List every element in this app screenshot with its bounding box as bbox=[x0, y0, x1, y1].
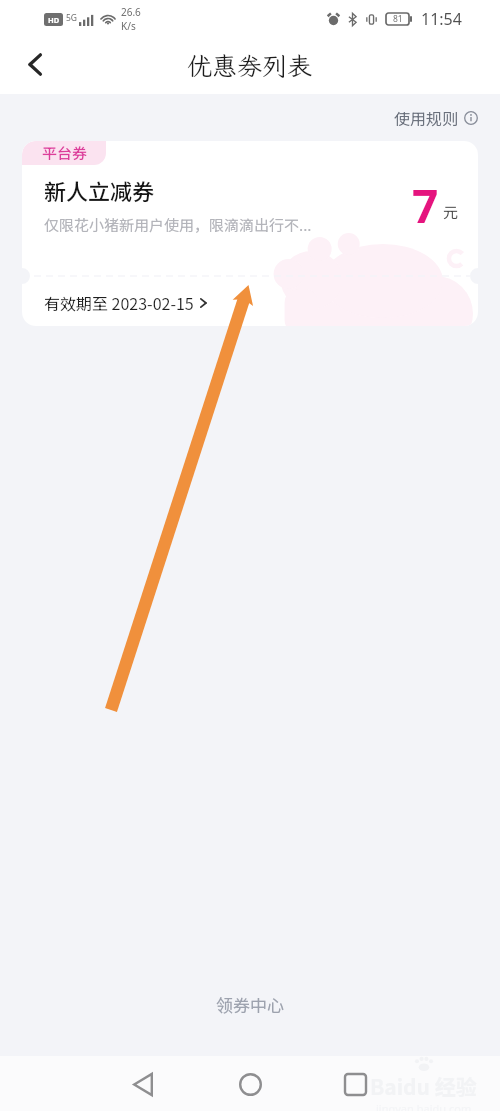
staticText: 平台券 bbox=[42, 142, 88, 164]
staticText: 11:54 bbox=[421, 8, 462, 30]
staticText: 优惠券列表 bbox=[187, 49, 313, 82]
button[interactable]: 使用规则 bbox=[390, 102, 482, 133]
button[interactable]: Recents bbox=[331, 1060, 379, 1108]
button[interactable]: 新人立减券 bbox=[22, 141, 478, 326]
staticText: 26.6 bbox=[121, 5, 141, 19]
button[interactable]: Back bbox=[119, 1060, 167, 1108]
staticText: 元 bbox=[443, 201, 459, 223]
staticText: HD bbox=[48, 15, 60, 25]
button[interactable]: 领券中心 bbox=[204, 986, 296, 1023]
staticText: K/s bbox=[121, 19, 136, 33]
staticText: 有效期至 2023-02-15 bbox=[44, 291, 194, 314]
staticText: 仅限花小猪新用户使用，限滴滴出行不... bbox=[44, 214, 312, 236]
staticText: 5G bbox=[66, 12, 78, 24]
staticText: Baidu 经验 bbox=[370, 1071, 477, 1101]
button[interactable]: Home bbox=[226, 1060, 274, 1108]
staticText: 81 bbox=[393, 13, 403, 25]
staticText: 7 bbox=[412, 174, 439, 237]
staticText: 新人立减券 bbox=[44, 174, 155, 206]
staticText: 使用规则 bbox=[394, 106, 459, 129]
button[interactable]: Back bbox=[13, 44, 57, 88]
